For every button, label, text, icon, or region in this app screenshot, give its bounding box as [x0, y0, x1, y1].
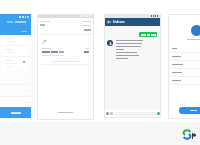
button[interactable] [172, 61, 200, 68]
button[interactable]: Send [157, 112, 160, 115]
button[interactable] [172, 69, 200, 76]
button[interactable] [172, 53, 200, 60]
button[interactable] [2, 35, 29, 45]
button[interactable] [139, 32, 157, 37]
button[interactable]: Emoji [106, 112, 109, 115]
button[interactable] [2, 57, 29, 67]
button[interactable] [0, 107, 31, 118]
button[interactable] [179, 107, 200, 114]
button[interactable] [172, 45, 200, 52]
button[interactable] [2, 46, 29, 56]
button[interactable] [172, 77, 200, 84]
staticText: Inbox [113, 19, 125, 25]
button[interactable]: Back [107, 20, 111, 24]
button[interactable]: Attach [110, 112, 113, 115]
